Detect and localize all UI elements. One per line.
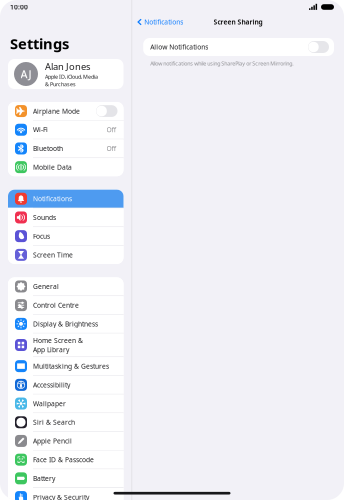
button[interactable]: Wallpaper	[8, 394, 123, 413]
staticText: Apple Pencil	[33, 436, 72, 445]
button[interactable]: Screen Time	[8, 246, 123, 264]
staticText: Mobile Data	[33, 163, 72, 172]
button[interactable]: Accessibility	[8, 376, 123, 394]
button[interactable]: Notifications	[8, 190, 123, 208]
button[interactable]: AJ	[0, 59, 131, 89]
staticText: Alan Jones	[45, 60, 90, 73]
staticText: Focus	[33, 232, 50, 241]
staticText: Screen Time	[33, 250, 73, 259]
staticText: Wallpaper	[33, 399, 66, 408]
staticText: & Purchases	[45, 81, 76, 88]
button[interactable]: Wi-Fi	[8, 121, 123, 139]
button[interactable]: Bluetooth	[8, 139, 123, 157]
button[interactable]: Focus	[8, 227, 123, 245]
staticText: Control Centre	[33, 301, 79, 310]
staticText: Home Screen &	[33, 336, 83, 345]
button[interactable]: Siri & Search	[8, 413, 123, 431]
staticText: Accessibility	[33, 380, 70, 389]
staticText: AJ	[20, 67, 31, 81]
staticText: Battery	[33, 474, 55, 483]
button[interactable]: Apple Pencil	[8, 432, 123, 450]
staticText: Siri & Search	[33, 418, 75, 427]
button[interactable]: Allow Notifications	[308, 41, 334, 53]
button[interactable]: Sounds	[8, 208, 123, 226]
staticText: Screen Sharing	[214, 18, 263, 26]
button[interactable]: Multitasking & Gestures	[8, 357, 123, 375]
staticText: Off	[106, 125, 116, 134]
button[interactable]: Privacy & Security	[8, 488, 123, 500]
staticText: Allow notifications while using SharePla…	[150, 60, 293, 67]
button[interactable]: Control Centre	[8, 296, 123, 314]
staticText: Notifications	[144, 18, 183, 26]
button[interactable]: Airplane Mode	[8, 102, 123, 120]
staticText: Airplane Mode	[33, 107, 80, 115]
staticText: Off	[106, 144, 116, 153]
staticText: Wi-Fi	[33, 125, 48, 134]
staticText: Privacy & Security	[33, 493, 89, 500]
staticText: Settings	[10, 34, 69, 53]
button[interactable]: Home Screen &	[8, 333, 123, 356]
staticText: Display & Brightness	[33, 319, 98, 328]
staticText: General	[33, 282, 59, 291]
staticText: Multitasking & Gestures	[33, 362, 109, 371]
button[interactable]: Mobile Data	[8, 158, 123, 176]
staticText: 10:00	[10, 3, 28, 11]
staticText: Notifications	[33, 194, 72, 203]
staticText: Face ID & Passcode	[33, 455, 94, 464]
button[interactable]: Face ID & Passcode	[8, 451, 123, 469]
button[interactable]: General	[8, 277, 123, 295]
staticText: Apple ID, iCloud, Media	[45, 73, 98, 80]
staticText: Allow Notifications	[150, 43, 208, 51]
button[interactable]: Battery	[8, 469, 123, 487]
staticText: Sounds	[33, 213, 56, 222]
button[interactable]: Display & Brightness	[8, 315, 123, 333]
staticText: Bluetooth	[33, 144, 63, 153]
staticText: App Library	[33, 345, 69, 354]
button[interactable]: Notifications	[132, 15, 187, 29]
